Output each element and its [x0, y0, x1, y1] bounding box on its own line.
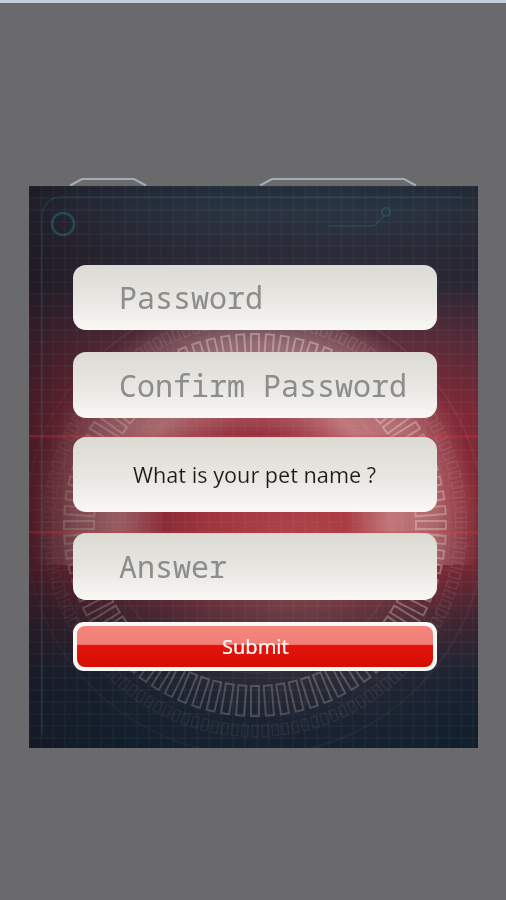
button[interactable]: Confirm Password — [73, 352, 437, 418]
button[interactable]: What is your pet name ? — [73, 437, 437, 512]
staticText: Submit — [222, 633, 289, 660]
staticText: Confirm Password — [119, 365, 407, 406]
button[interactable]: Submit — [77, 626, 433, 667]
staticText: What is your pet name ? — [133, 460, 377, 489]
staticText: Password — [119, 277, 263, 318]
button[interactable]: Password — [73, 265, 437, 330]
staticText: Answer — [119, 546, 227, 587]
button[interactable]: Answer — [73, 533, 437, 600]
